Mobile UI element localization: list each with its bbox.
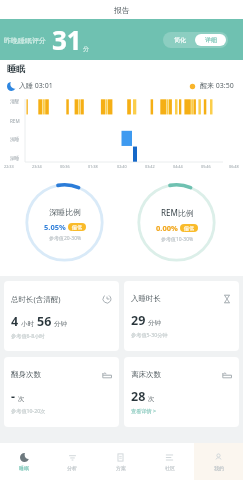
staticText: 02:40 bbox=[117, 164, 127, 169]
staticText: 04:44 bbox=[173, 164, 183, 169]
button[interactable]: 离床次数 bbox=[124, 357, 239, 427]
staticText: 醒来 03:50 bbox=[200, 81, 234, 91]
staticText: 睡眠 bbox=[7, 63, 25, 74]
staticText: 4 bbox=[11, 313, 19, 330]
staticText: 分钟 bbox=[148, 319, 161, 327]
staticText: 浅睡 bbox=[10, 137, 20, 143]
staticText: 参考值6-8小时 bbox=[11, 332, 45, 339]
staticText: 0.00% bbox=[156, 223, 178, 233]
staticText: 31 bbox=[52, 22, 82, 57]
staticText: 5.05% bbox=[44, 222, 66, 232]
staticText: 01:38 bbox=[88, 164, 98, 169]
button[interactable]: 入睡时长 bbox=[124, 281, 239, 351]
staticText: 28 bbox=[131, 388, 146, 405]
button[interactable]: 我的 bbox=[194, 443, 243, 480]
staticText: 简化 bbox=[174, 36, 186, 44]
staticText: 偏低 bbox=[72, 224, 82, 230]
staticText: 睡眠 bbox=[19, 465, 29, 471]
staticText: 社区 bbox=[165, 465, 175, 471]
staticText: 深睡比例 bbox=[49, 207, 81, 217]
button[interactable]: REM比例 bbox=[137, 183, 216, 262]
staticText: 离床次数 bbox=[131, 370, 161, 379]
staticText: 22:33 bbox=[4, 164, 14, 169]
staticText: - bbox=[11, 388, 16, 405]
staticText: 分钟 bbox=[54, 320, 67, 328]
staticText: 查看详情 > bbox=[131, 407, 157, 414]
staticText: 29 bbox=[131, 312, 146, 329]
staticText: 56 bbox=[37, 313, 52, 330]
staticText: 参考值5-30分钟 bbox=[131, 331, 168, 338]
button[interactable]: 详细 bbox=[195, 34, 226, 46]
staticText: 昨晚睡眠评分 bbox=[4, 36, 46, 45]
button[interactable]: 方案 bbox=[96, 443, 145, 480]
staticText: 清醒 bbox=[10, 99, 20, 105]
staticText: 报告 bbox=[114, 5, 130, 15]
button[interactable]: 总时长(含清醒) bbox=[4, 281, 119, 351]
staticText: 分析 bbox=[67, 465, 77, 471]
button[interactable]: 社区 bbox=[145, 443, 194, 480]
button[interactable]: 睡眠 bbox=[0, 443, 48, 480]
staticText: 翻身次数 bbox=[11, 370, 41, 379]
staticText: 详细 bbox=[205, 36, 217, 44]
staticText: 参考值20-30% bbox=[49, 235, 82, 242]
staticText: 深睡 bbox=[10, 156, 20, 162]
button[interactable]: 翻身次数 bbox=[4, 357, 119, 427]
staticText: 06:48 bbox=[229, 164, 239, 169]
staticText: 偏低 bbox=[184, 225, 194, 231]
staticText: REM比例 bbox=[161, 207, 194, 218]
button[interactable]: 简化 bbox=[165, 34, 195, 46]
staticText: 分 bbox=[83, 45, 89, 53]
staticText: 次 bbox=[18, 395, 25, 403]
staticText: 00:36 bbox=[60, 164, 70, 169]
staticText: 方案 bbox=[116, 465, 126, 471]
staticText: 我的 bbox=[214, 465, 224, 471]
button[interactable]: 深睡比例 bbox=[25, 183, 104, 262]
staticText: 入睡 03:01 bbox=[19, 81, 53, 91]
staticText: 03:42 bbox=[145, 164, 155, 169]
staticText: 23:34 bbox=[32, 164, 42, 169]
staticText: 参考值10-30% bbox=[161, 236, 194, 243]
staticText: 05:46 bbox=[201, 164, 211, 169]
staticText: 次 bbox=[148, 395, 155, 403]
button[interactable]: 分析 bbox=[48, 443, 96, 480]
staticText: 总时长(含清醒) bbox=[11, 294, 61, 304]
staticText: 参考值10-20次 bbox=[11, 407, 46, 414]
staticText: REM bbox=[10, 118, 20, 124]
staticText: 小时 bbox=[21, 320, 34, 328]
staticText: 入睡时长 bbox=[131, 294, 161, 303]
